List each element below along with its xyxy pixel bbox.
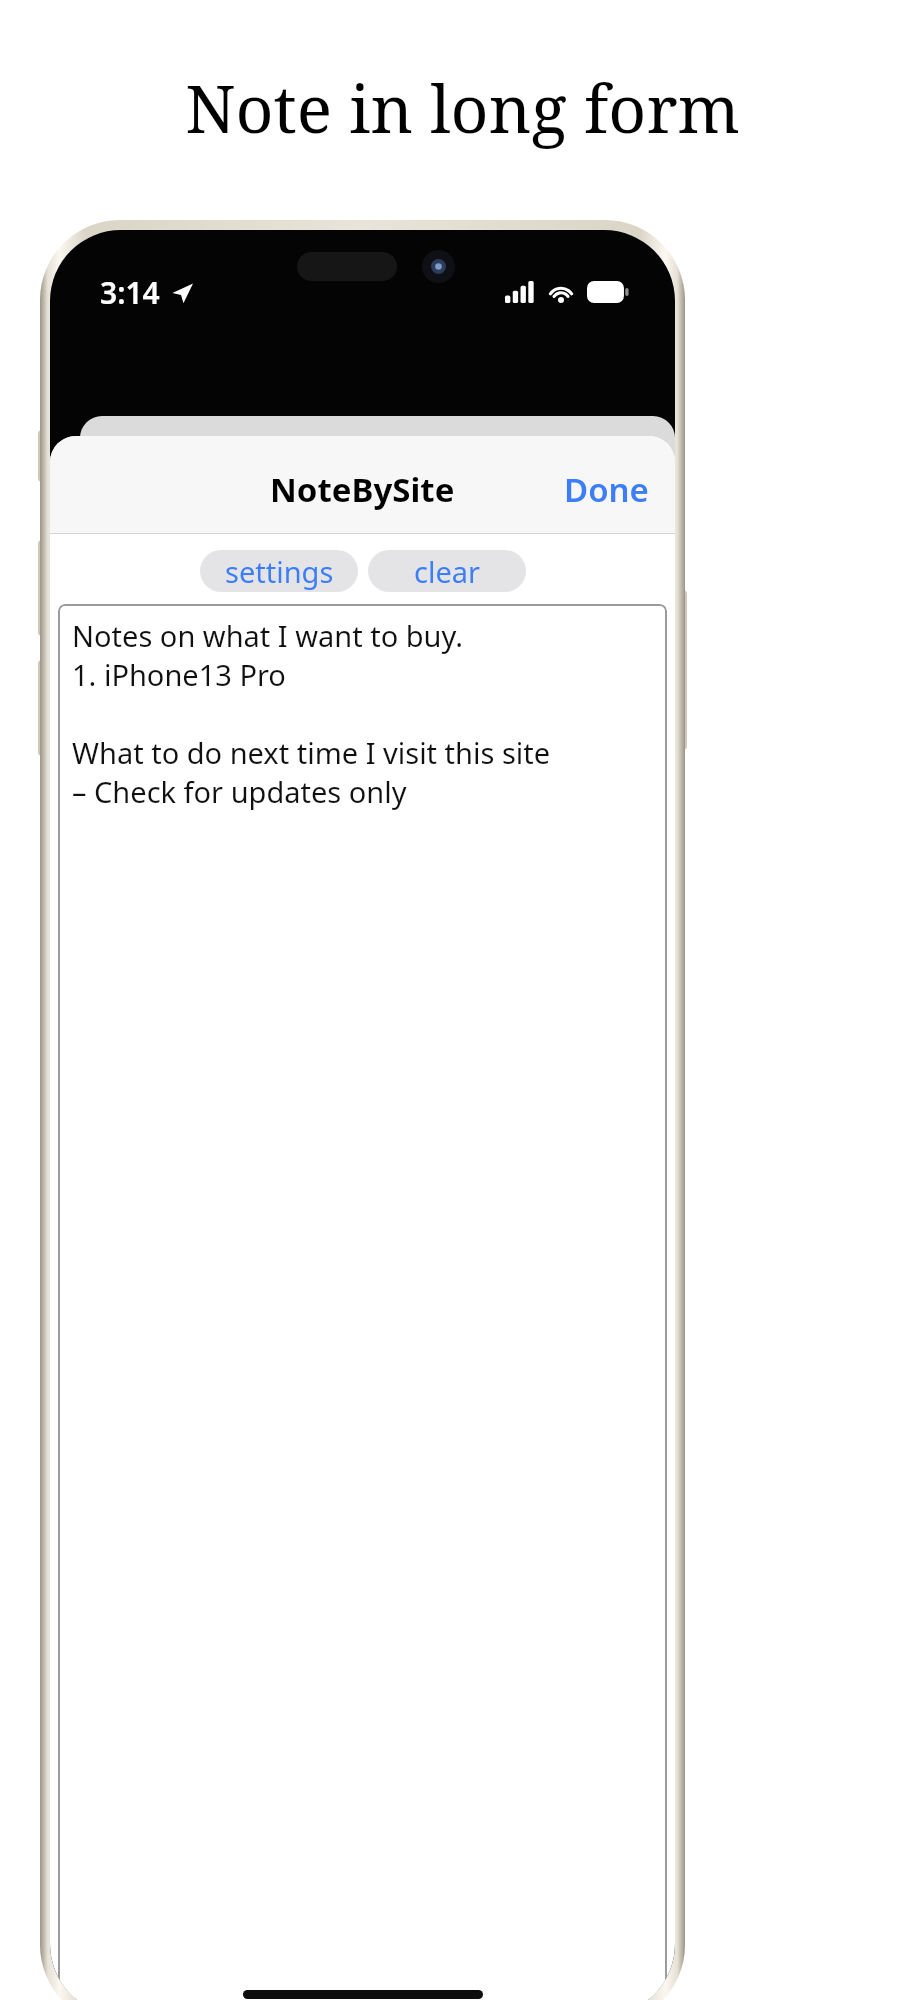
staticText: – Check for updates only bbox=[72, 772, 407, 811]
staticText: NoteBySite bbox=[270, 467, 455, 512]
staticText: 1. iPhone13 Pro bbox=[72, 655, 286, 694]
other: Location active bbox=[170, 281, 194, 305]
staticText: Done bbox=[564, 467, 649, 512]
button[interactable]: clear bbox=[368, 550, 526, 592]
staticText: 3:14 bbox=[100, 272, 160, 313]
staticText: settings bbox=[225, 552, 334, 591]
staticText: What to do next time I visit this site bbox=[72, 733, 551, 772]
button[interactable]: settings bbox=[200, 550, 358, 592]
button[interactable]: Notes on what I want to buy. bbox=[58, 604, 667, 2000]
staticText: Notes on what I want to buy. bbox=[72, 616, 463, 655]
staticText: clear bbox=[414, 552, 481, 591]
button[interactable]: Done bbox=[538, 457, 675, 522]
staticText: Note in long form bbox=[185, 62, 740, 152]
